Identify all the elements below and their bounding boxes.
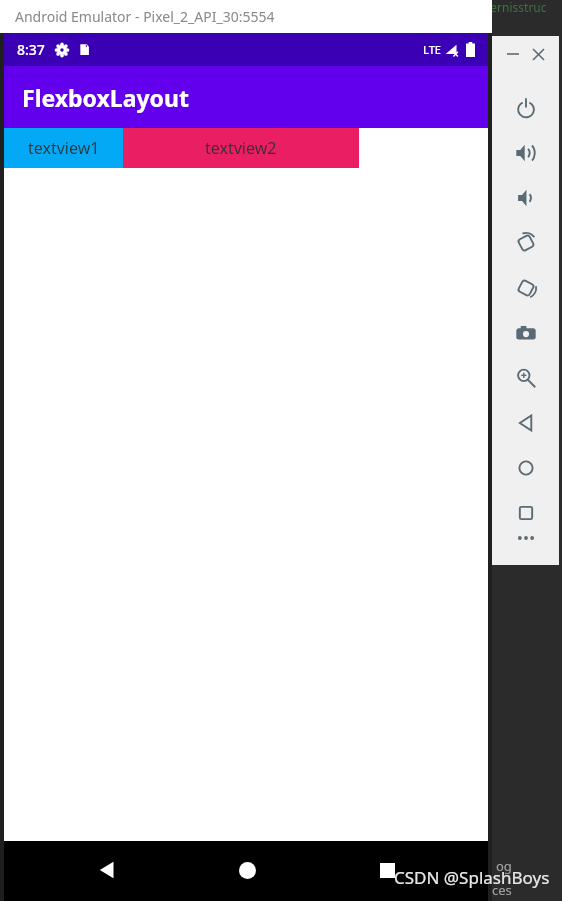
button[interactable]: Rotate right (506, 268, 546, 308)
button[interactable]: FlexboxLayout (4, 66, 488, 128)
staticText: LTE (423, 42, 441, 57)
staticText: ternisstruc (486, 0, 547, 15)
button[interactable]: More (506, 518, 546, 558)
button[interactable]: Power (506, 88, 546, 128)
staticText: ces (492, 881, 512, 899)
staticText: 8:37 (17, 40, 45, 59)
staticText: textview1 (28, 137, 100, 159)
button[interactable]: Home (506, 448, 546, 488)
staticText: textview2 (205, 137, 277, 159)
button[interactable]: Minimize (500, 41, 526, 67)
button[interactable]: Close (525, 41, 551, 67)
button[interactable]: Volume down (506, 178, 546, 218)
button[interactable]: Back (506, 403, 546, 443)
button[interactable]: Zoom (506, 358, 546, 398)
button[interactable]: Rotate left (506, 223, 546, 263)
button[interactable]: Overview (506, 493, 546, 533)
button[interactable]: Volume up (506, 133, 546, 173)
button[interactable]: Screenshot (506, 313, 546, 353)
staticText: og (496, 857, 512, 875)
staticText: FlexboxLayout (22, 82, 189, 113)
staticText: Android Emulator - Pixel_2_API_30:5554 (15, 7, 275, 26)
button[interactable]: Home (223, 846, 271, 894)
button[interactable]: Recent apps (363, 846, 411, 894)
button[interactable]: textview2 (123, 128, 359, 168)
button[interactable]: Back (83, 846, 131, 894)
staticText: CSDN @SplashBoys (394, 866, 550, 889)
button[interactable]: textview1 (4, 128, 123, 168)
